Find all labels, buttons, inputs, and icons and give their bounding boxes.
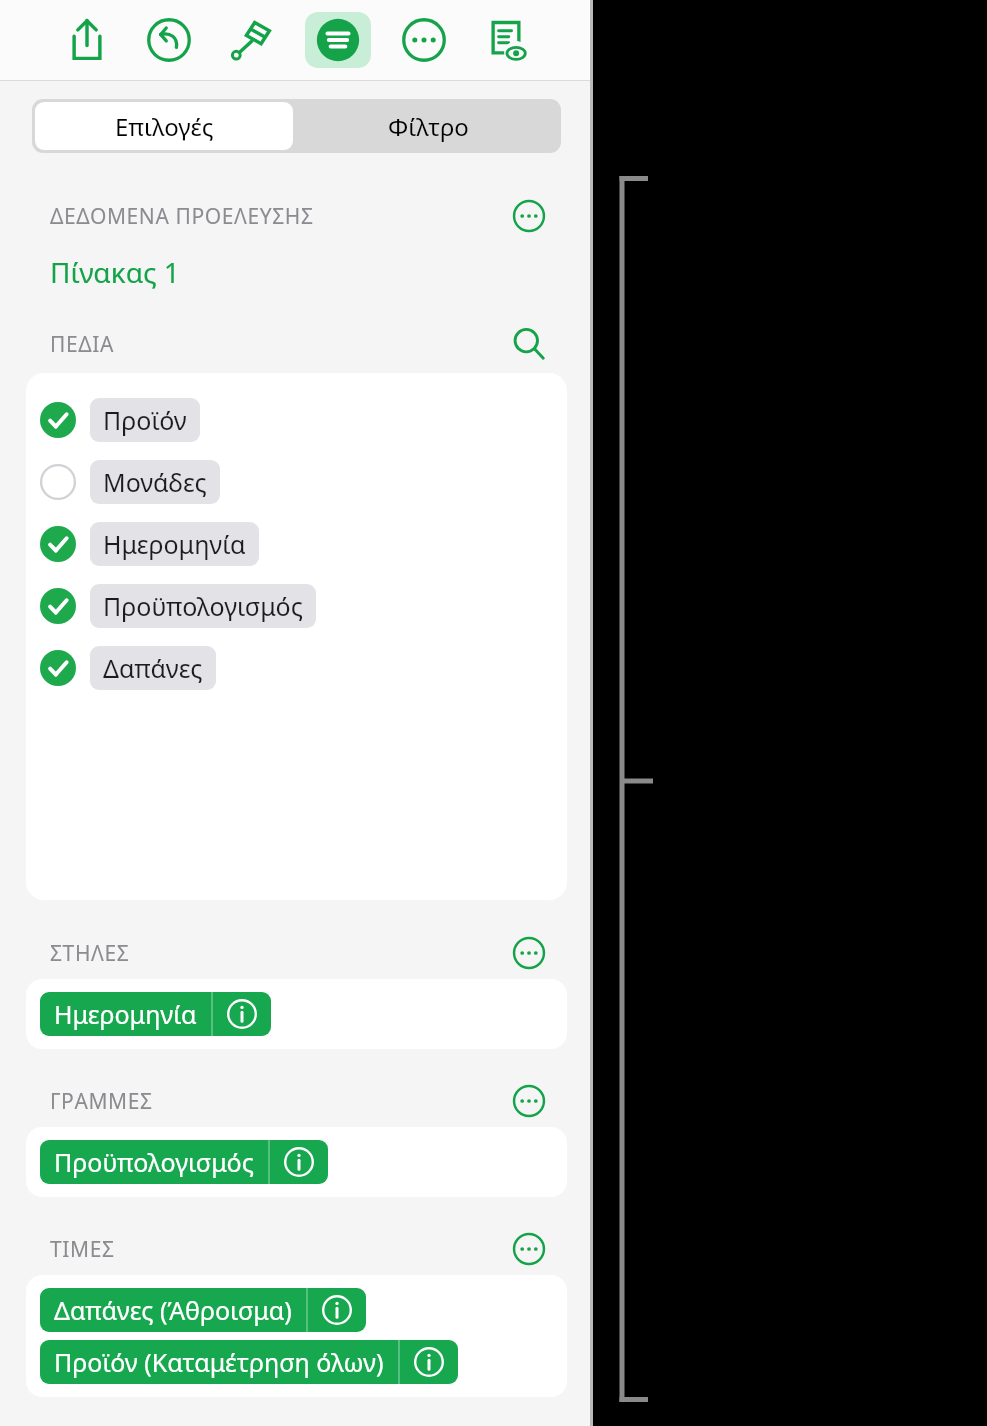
staticText: Δαπάνες (Άθροισμα) (54, 1293, 292, 1327)
staticText: Ημερομηνία (54, 997, 197, 1031)
button[interactable]: Search (509, 327, 549, 361)
staticText: ΓΡΑΜΜΕΣ (50, 1087, 153, 1116)
button[interactable]: Δαπάνες (26, 637, 567, 699)
staticText: ΔΕΔΟΜΕΝΑ ΠΡΟΕΛΕΥΣΗΣ (50, 202, 314, 231)
button[interactable]: Προϋπολογισμός (40, 1140, 328, 1184)
staticText: Δαπάνες (103, 651, 203, 685)
button[interactable]: Info (400, 1340, 458, 1384)
staticText: ΠΕΔΙΑ (50, 330, 114, 359)
staticText: Προϊόν (Καταμέτρηση όλων) (54, 1345, 384, 1379)
button[interactable]: Ημερομηνία (40, 992, 271, 1036)
staticText: Μονάδες (103, 465, 207, 499)
button[interactable]: Φίλτρο (296, 99, 561, 153)
button[interactable]: Info (308, 1288, 366, 1332)
button[interactable]: Ημερομηνία (26, 513, 567, 575)
button[interactable]: Πίνακας 1 (50, 253, 180, 291)
button[interactable]: Προϊόν (26, 389, 567, 451)
staticText: Προϋπολογισμός (103, 589, 303, 623)
button[interactable]: Share (58, 11, 116, 69)
staticText: Φίλτρο (388, 110, 469, 143)
button[interactable]: More (395, 11, 453, 69)
staticText: Προϊόν (103, 403, 187, 437)
button[interactable]: More options (509, 936, 549, 970)
staticText: ΤΙΜΕΣ (50, 1235, 115, 1264)
button[interactable]: More options (509, 1084, 549, 1118)
staticText: Ημερομηνία (103, 527, 246, 561)
staticText: ΣΤΗΛΕΣ (50, 939, 130, 968)
staticText: Προϋπολογισμός (54, 1145, 254, 1179)
button[interactable]: Format (222, 11, 280, 69)
button[interactable]: More options (509, 199, 549, 233)
button[interactable]: Επιλογές (35, 102, 293, 150)
button[interactable]: Undo (140, 11, 198, 69)
button[interactable]: Προϋπολογισμός (26, 575, 567, 637)
staticText: Επιλογές (115, 110, 214, 143)
button[interactable]: Pivot options (305, 12, 371, 68)
button[interactable]: Δαπάνες (Άθροισμα) (40, 1288, 366, 1332)
button[interactable]: Προϊόν (Καταμέτρηση όλων) (40, 1340, 458, 1384)
button[interactable]: More options (509, 1232, 549, 1266)
button[interactable]: Document (477, 11, 535, 69)
button[interactable]: Info (213, 992, 271, 1036)
button[interactable]: Info (270, 1140, 328, 1184)
button[interactable]: Μονάδες (26, 451, 567, 513)
